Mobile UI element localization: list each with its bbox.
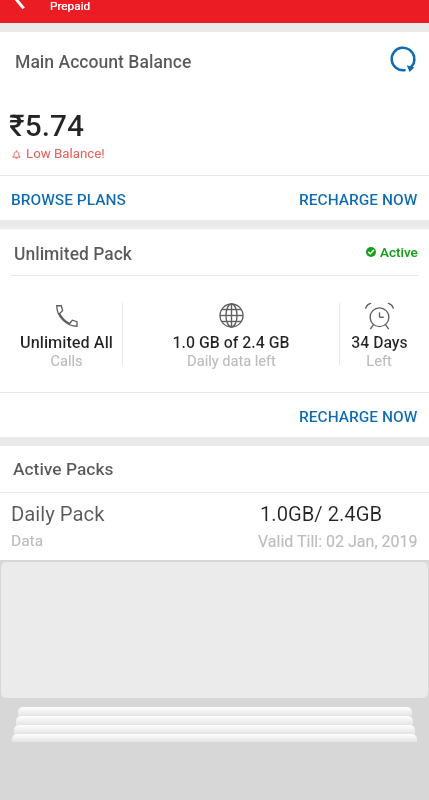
staticText: Data — [11, 532, 44, 550]
button[interactable]: RECHARGE NOW — [288, 180, 429, 216]
staticText: 34 Days — [351, 333, 408, 352]
staticText: RECHARGE NOW — [299, 408, 418, 426]
staticText: 1.0 GB of 2.4 GB — [172, 333, 290, 352]
staticText: Active Packs — [13, 459, 114, 479]
staticText: RECHARGE NOW — [299, 191, 418, 209]
staticText: Prepaid — [50, 0, 91, 13]
button[interactable]: Daily Pack — [0, 493, 429, 560]
staticText: Main Account Balance — [15, 52, 192, 73]
staticText: Unlimited All — [20, 333, 113, 352]
button[interactable]: RECHARGE NOW — [288, 397, 429, 433]
staticText: ₹5.74 — [9, 108, 85, 143]
button[interactable]: Back — [4, 0, 30, 5]
staticText: Valid Till: 02 Jan, 2019 — [258, 532, 418, 551]
staticText: Active — [380, 244, 418, 260]
button[interactable]: Refresh — [385, 41, 421, 77]
button[interactable]: BROWSE PLANS — [0, 180, 137, 216]
staticText: 1.0GB/ 2.4GB — [260, 502, 383, 526]
staticText: Daily data left — [187, 352, 276, 369]
staticText: Daily Pack — [11, 502, 105, 526]
staticText: Unlimited Pack — [14, 244, 132, 265]
staticText: BROWSE PLANS — [11, 191, 126, 209]
staticText: Left — [366, 352, 392, 369]
staticText: Calls — [50, 352, 83, 369]
staticText: Low Balance! — [26, 146, 105, 162]
